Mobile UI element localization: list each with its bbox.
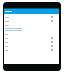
button[interactable] [4, 32, 59, 36]
button[interactable] [4, 9, 59, 14]
button[interactable] [5, 28, 59, 32]
button[interactable]: More options [4, 44, 59, 48]
button[interactable]: More options [4, 48, 59, 52]
button[interactable]: More options [4, 40, 59, 44]
button[interactable]: More options [4, 36, 59, 40]
button[interactable]: More options [4, 15, 59, 19]
button[interactable]: More options [4, 19, 59, 23]
button[interactable] [4, 23, 59, 27]
